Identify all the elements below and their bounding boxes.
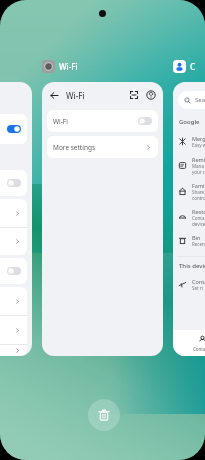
button[interactable]: Sea: [178, 91, 205, 109]
staticText: Famil: [192, 182, 205, 189]
button[interactable]: Help: [146, 90, 156, 100]
button[interactable]: [0, 82, 32, 356]
staticText: your c: [192, 169, 205, 175]
button[interactable]: App icon: [173, 58, 196, 74]
staticText: Conta: [192, 215, 205, 221]
staticText: Easy w: [192, 142, 205, 148]
other: App icon: [42, 60, 55, 73]
button[interactable]: Resto: [178, 204, 205, 230]
other: App icon: [173, 60, 186, 73]
button[interactable]: Scan QR code: [129, 90, 139, 100]
staticText: Wi-Fi: [59, 61, 78, 72]
staticText: Recen: [192, 241, 205, 247]
button[interactable]: Contacts: [173, 330, 205, 356]
staticText: Remi: [192, 156, 205, 163]
button[interactable]: App icon: [42, 58, 78, 74]
staticText: Set ri: [192, 285, 203, 291]
button[interactable]: Back: [49, 90, 60, 101]
staticText: Wi-Fi: [53, 117, 68, 126]
button[interactable]: [0, 287, 27, 356]
staticText: Contacts: [193, 346, 205, 352]
button[interactable]: [0, 199, 27, 255]
staticText: Share: [192, 189, 205, 195]
staticText: Wi-Fi: [66, 90, 85, 101]
staticText: C: [190, 61, 196, 72]
button[interactable]: Clear all: [88, 399, 120, 431]
button[interactable]: [0, 170, 27, 196]
staticText: Conta: [192, 278, 205, 285]
button[interactable]: Famil: [178, 178, 205, 204]
staticText: Mana: [192, 163, 204, 169]
button[interactable]: Bin: [178, 230, 205, 251]
button[interactable]: More settings: [47, 136, 158, 158]
staticText: This devic: [179, 262, 205, 270]
button[interactable]: Conta: [178, 274, 205, 295]
staticText: Bin: [192, 234, 201, 241]
button[interactable]: Remi: [178, 152, 205, 178]
staticText: More settings: [53, 143, 96, 152]
staticText: Sea: [195, 96, 205, 104]
staticText: contro: [192, 195, 205, 201]
button[interactable]: Back: [42, 82, 163, 356]
button[interactable]: [0, 258, 27, 284]
staticText: Resto: [192, 208, 205, 215]
button[interactable]: Sea: [173, 82, 205, 356]
staticText: Google: [179, 118, 200, 126]
button[interactable]: Wi-Fi: [47, 110, 158, 132]
button[interactable]: [0, 114, 27, 144]
button[interactable]: Merg: [178, 131, 205, 152]
staticText: Merg: [192, 135, 205, 142]
staticText: device: [192, 221, 205, 227]
